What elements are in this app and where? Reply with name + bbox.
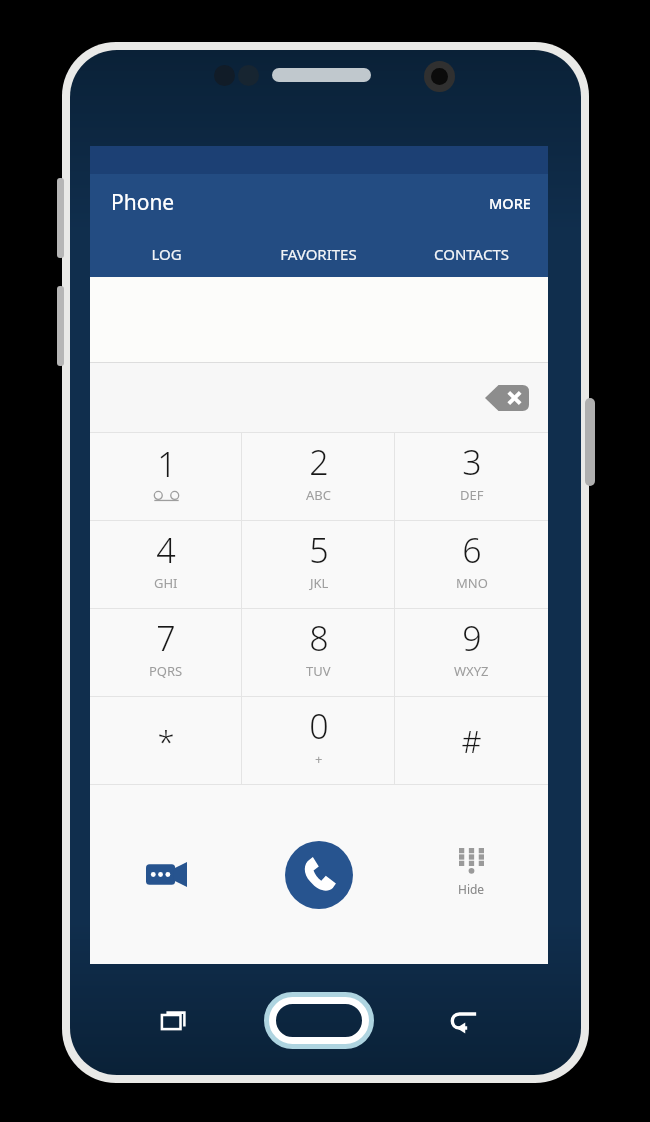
staticText: 4: [156, 527, 176, 573]
staticText: LOG: [151, 244, 182, 264]
staticText: CONTACTS: [434, 244, 509, 264]
button[interactable]: Back: [438, 995, 490, 1047]
staticText: MORE: [489, 193, 531, 213]
staticText: 8: [309, 615, 329, 661]
staticText: 2: [309, 439, 329, 485]
button[interactable]: 0: [242, 697, 395, 784]
button[interactable]: Home: [268, 996, 370, 1045]
staticText: +: [315, 750, 323, 768]
button[interactable]: 4: [90, 521, 242, 608]
staticText: ABC: [306, 486, 331, 504]
staticText: DEF: [460, 486, 484, 504]
staticText: 7: [156, 615, 176, 661]
staticText: 9: [462, 615, 482, 661]
button[interactable]: 8: [242, 609, 395, 696]
staticText: 1: [157, 441, 177, 487]
staticText: *: [157, 720, 175, 762]
staticText: MNO: [456, 574, 488, 592]
staticText: FAVORITES: [280, 244, 357, 264]
staticText: 3: [462, 439, 482, 485]
button[interactable]: LOG: [90, 231, 242, 277]
staticText: Phone: [111, 188, 175, 217]
button[interactable]: CONTACTS: [395, 231, 548, 277]
staticText: #: [461, 720, 482, 762]
button[interactable]: Video call: [90, 785, 242, 964]
staticText: Hide: [458, 881, 485, 897]
button[interactable]: 7: [90, 609, 242, 696]
button[interactable]: 9: [395, 609, 548, 696]
button[interactable]: Hide keypad: [395, 785, 548, 964]
button[interactable]: 1: [90, 433, 242, 520]
button[interactable]: Backspace: [474, 372, 540, 424]
staticText: JKL: [310, 574, 329, 592]
button[interactable]: Recent apps: [150, 995, 202, 1047]
staticText: 6: [462, 527, 482, 573]
button[interactable]: FAVORITES: [242, 231, 395, 277]
staticText: WXYZ: [454, 662, 489, 680]
button[interactable]: 5: [242, 521, 395, 608]
staticText: 5: [309, 527, 329, 573]
button[interactable]: MORE: [472, 174, 548, 231]
staticText: TUV: [306, 662, 331, 680]
button[interactable]: Call: [242, 785, 395, 964]
staticText: GHI: [154, 574, 178, 592]
button[interactable]: 2: [242, 433, 395, 520]
button[interactable]: 3: [395, 433, 548, 520]
button[interactable]: *: [90, 697, 242, 784]
staticText: PQRS: [149, 662, 183, 680]
button[interactable]: #: [395, 697, 548, 784]
button[interactable]: 6: [395, 521, 548, 608]
staticText: 0: [309, 703, 329, 749]
